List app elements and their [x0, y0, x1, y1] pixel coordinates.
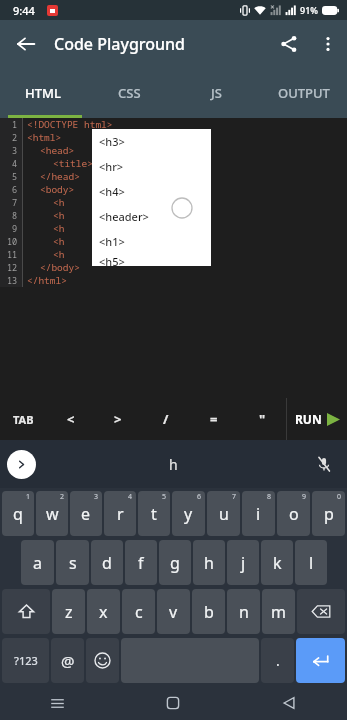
button[interactable]: f [125, 540, 157, 585]
button[interactable]: i [242, 491, 275, 536]
button[interactable]: h [169, 455, 178, 474]
button[interactable]: Emoji [86, 638, 119, 683]
button[interactable]: / [142, 398, 190, 440]
button[interactable]: b [192, 589, 225, 634]
staticText: = [210, 410, 218, 428]
staticText: <h [53, 209, 65, 222]
button[interactable]: x [87, 589, 120, 634]
button[interactable]: s [56, 540, 89, 585]
staticText: 1 [26, 492, 31, 502]
button[interactable]: Share [269, 24, 309, 64]
button[interactable]: w [36, 491, 68, 536]
staticText: <!DOCTYPE html> [27, 118, 113, 131]
staticText: p [324, 503, 334, 525]
staticText: h [204, 552, 214, 574]
button[interactable]: Voice input off [311, 451, 337, 477]
button[interactable]: e [70, 491, 102, 536]
button[interactable]: q [2, 491, 34, 536]
button[interactable]: @ [51, 638, 84, 683]
button[interactable]: l [295, 540, 327, 585]
staticText: 0 [337, 492, 342, 502]
button[interactable]: Enter [296, 638, 345, 683]
button[interactable]: o [277, 491, 310, 536]
staticText: @ [61, 651, 75, 671]
staticText: 9:44 [13, 3, 35, 18]
button[interactable]: HTML [0, 68, 86, 118]
button[interactable]: <h5> [92, 254, 211, 266]
staticText: v [169, 601, 178, 623]
button[interactable]: g [159, 540, 191, 585]
staticText: . [276, 651, 280, 670]
button[interactable]: u [207, 491, 240, 536]
button[interactable]: CSS [86, 68, 173, 118]
button[interactable]: c [122, 589, 155, 634]
button[interactable]: <header> [92, 204, 211, 229]
button[interactable]: z [52, 589, 85, 634]
button[interactable]: p [312, 491, 345, 536]
staticText: g [170, 552, 180, 574]
staticText: <h [53, 196, 65, 209]
button[interactable]: Recent apps [0, 686, 115, 720]
button[interactable]: ?123 [2, 638, 49, 683]
staticText: j [241, 552, 246, 574]
button[interactable]: = [190, 398, 238, 440]
staticText: 3 [12, 145, 18, 157]
button[interactable]: Expand toolbar [7, 450, 36, 479]
button[interactable]: <h3> [92, 129, 211, 154]
staticText: 6 [197, 492, 202, 502]
button[interactable]: <h4> [92, 179, 211, 204]
staticText: " [259, 410, 266, 428]
button[interactable]: > [94, 398, 142, 440]
button[interactable]: More options [309, 25, 347, 63]
staticText: TAB [13, 412, 34, 427]
button[interactable]: Back [6, 24, 46, 64]
button[interactable]: r [104, 491, 136, 536]
button[interactable]: k [261, 540, 293, 585]
staticText: Code Playground [54, 33, 186, 55]
staticText: 7 [232, 492, 237, 502]
staticText: 9 [302, 492, 307, 502]
staticText: q [13, 503, 23, 525]
button[interactable]: n [227, 589, 260, 634]
staticText: 4 [12, 158, 18, 170]
staticText: 91% [300, 4, 318, 16]
staticText: <h4> [99, 184, 125, 199]
button[interactable]: Shift [2, 589, 50, 634]
other: Enter [311, 653, 330, 668]
staticText: 2 [12, 132, 18, 144]
button[interactable]: j [227, 540, 259, 585]
button[interactable]: a [21, 540, 54, 585]
staticText: </head> [40, 170, 80, 183]
button[interactable]: OUTPUT [260, 68, 347, 118]
button[interactable]: RUN [287, 398, 347, 440]
button[interactable]: m [262, 589, 295, 634]
staticText: m [271, 601, 286, 623]
button[interactable]: Home [115, 686, 231, 720]
button[interactable]: < [47, 398, 94, 440]
button[interactable]: JS [173, 68, 260, 118]
staticText: / [163, 410, 169, 428]
staticText: RUN [295, 411, 322, 427]
button[interactable]: . [261, 638, 294, 683]
button[interactable]: y [172, 491, 205, 536]
button[interactable]: TAB [0, 398, 47, 440]
staticText: 11 [7, 249, 18, 261]
staticText: </html> [27, 274, 67, 287]
button[interactable]: d [91, 540, 123, 585]
staticText: a [33, 552, 42, 574]
button[interactable]: v [157, 589, 190, 634]
staticText: <h5> [99, 254, 125, 266]
other: Emoji [94, 652, 111, 669]
button[interactable]: t [138, 491, 170, 536]
staticText: HTML [25, 84, 61, 102]
button[interactable]: h [193, 540, 225, 585]
button[interactable]: Back [231, 686, 347, 720]
staticText: 2 [60, 492, 65, 502]
button[interactable]: <hr> [92, 154, 211, 179]
button[interactable]: " [238, 398, 286, 440]
button[interactable]: Backspace [297, 589, 345, 634]
button[interactable]: <h1> [92, 229, 211, 254]
other: Shift [18, 603, 35, 620]
staticText: <title>Playground</title> [53, 157, 196, 170]
